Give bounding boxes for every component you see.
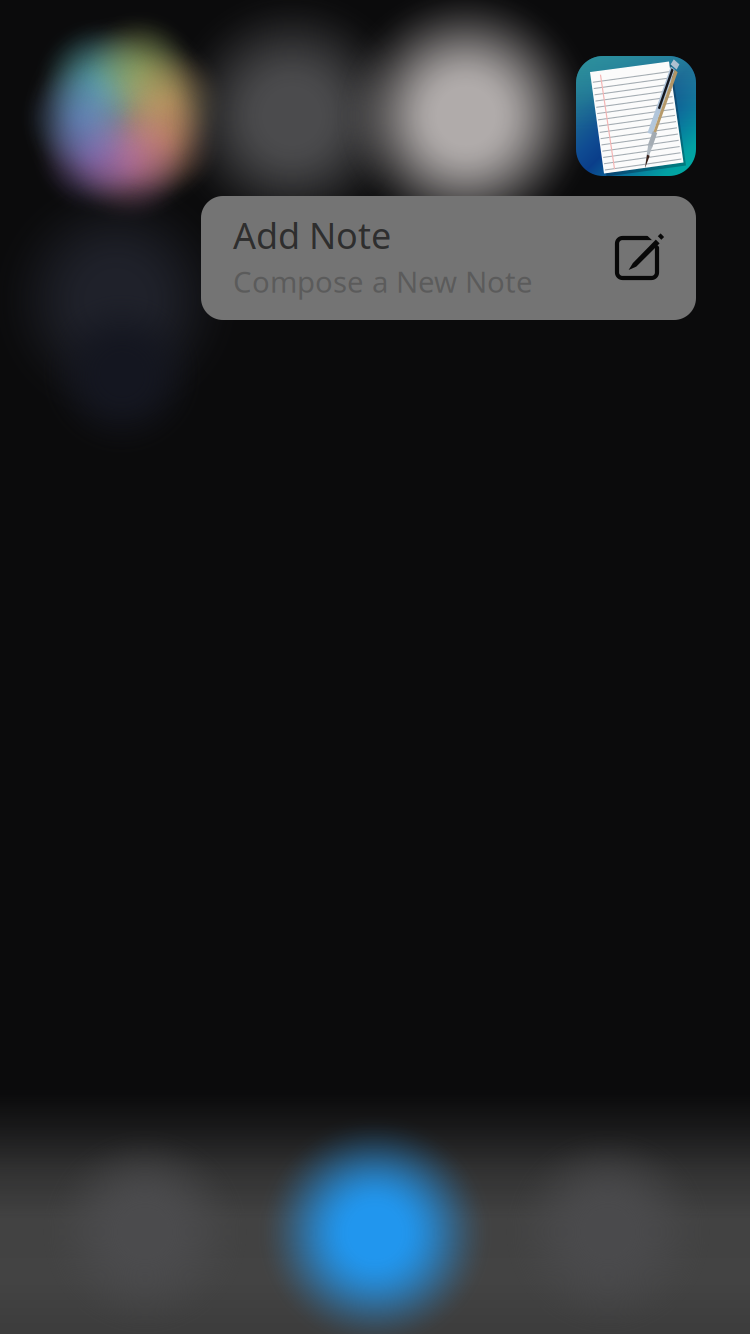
staticText: Compose a New Note xyxy=(233,262,533,301)
button[interactable]: Add Note xyxy=(201,196,696,320)
button[interactable]: Notes xyxy=(576,56,696,176)
staticText: Add Note xyxy=(233,211,391,259)
